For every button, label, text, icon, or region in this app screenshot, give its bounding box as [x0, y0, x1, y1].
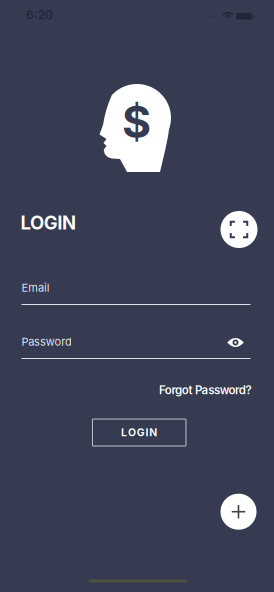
staticText: Forgot Password?: [159, 383, 251, 397]
button[interactable]: Email: [21, 281, 250, 305]
button[interactable]: Add: [220, 494, 256, 530]
button[interactable]: Password: [21, 335, 250, 359]
staticText: LOGIN: [20, 211, 76, 234]
button[interactable]: Scan to log in: [220, 211, 257, 248]
staticText: LOGIN: [121, 426, 157, 439]
staticText: Password: [21, 335, 72, 348]
button[interactable]: Show password: [225, 334, 245, 350]
button[interactable]: Forgot Password?: [159, 383, 251, 397]
staticText: 6:20: [26, 7, 53, 22]
staticText: $: [122, 95, 151, 148]
staticText: Email: [21, 281, 50, 294]
button[interactable]: LOGIN: [92, 419, 186, 446]
